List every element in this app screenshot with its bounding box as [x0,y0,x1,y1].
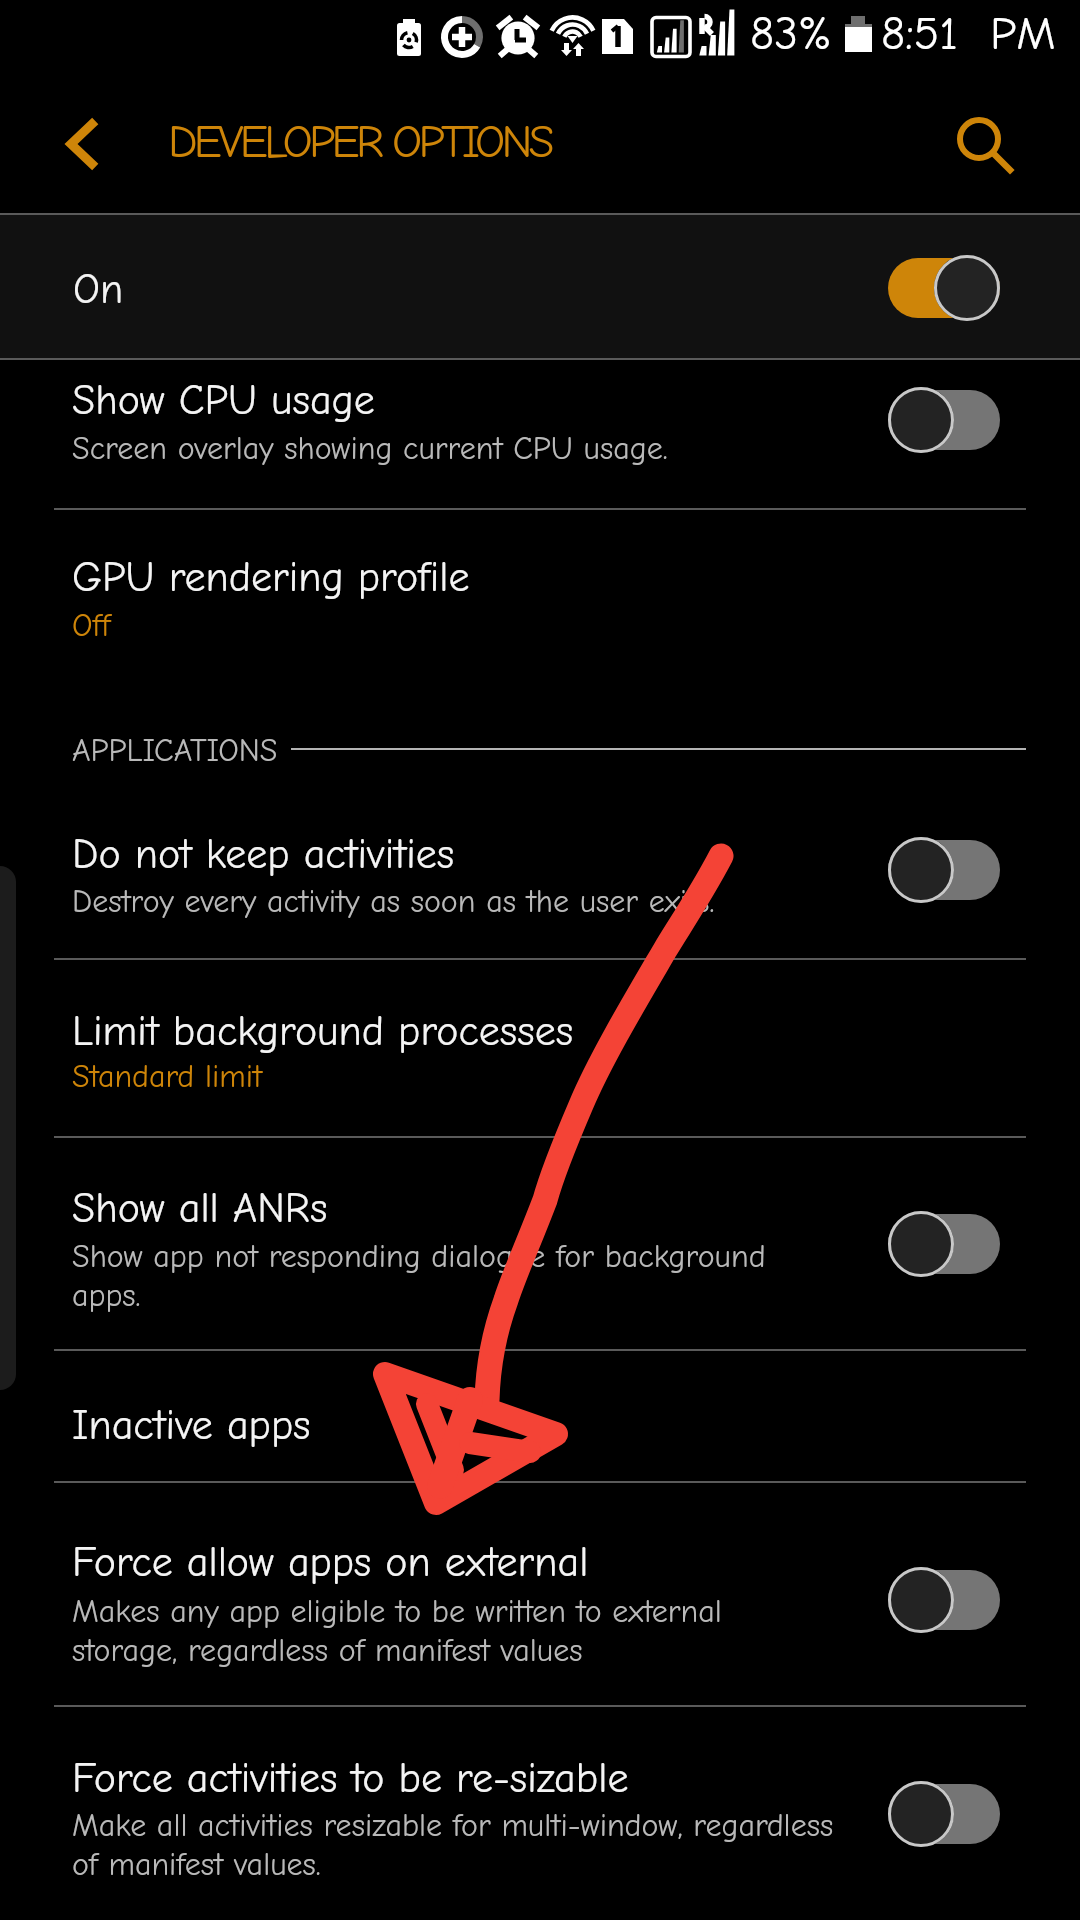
staticText: Off [72,607,111,644]
button[interactable]: Back [30,70,134,218]
staticText: Show CPU usage [72,376,375,424]
button[interactable]: Switch off [874,1770,1014,1858]
staticText: Inactive apps [72,1401,311,1449]
staticText: DEVELOPER OPTIONS [168,115,551,169]
button[interactable]: Switch off [874,376,1014,464]
button[interactable]: Switch off [874,1556,1014,1644]
button[interactable]: Switch off [874,826,1014,914]
staticText: Force allow apps on external [72,1538,589,1586]
button[interactable] [0,1137,1080,1349]
staticText: Standard limit [72,1058,263,1095]
button[interactable] [0,214,1080,359]
staticText: APPLICATIONS [72,732,278,769]
staticText: Destroy every activity as soon as the us… [72,883,715,920]
button[interactable]: Search [930,70,1040,218]
staticText: GPU rendering profile [72,553,470,601]
staticText: 8:51 [881,7,958,61]
button[interactable] [0,760,1080,958]
button[interactable] [0,359,1080,508]
staticText: Limit background processes [72,1007,574,1055]
button[interactable] [0,509,1080,700]
staticText: Make all activities resizable for multi-… [72,1807,834,1883]
staticText: Screen overlay showing current CPU usage… [72,430,668,467]
button[interactable] [0,1350,1080,1481]
button[interactable] [0,1482,1080,1705]
button[interactable] [0,959,1080,1136]
staticText: Do not keep activities [72,830,455,878]
staticText: 83% [750,7,832,61]
button[interactable] [0,1706,1080,1900]
staticText: PM [990,7,1056,61]
staticText: Show all ANRs [72,1184,328,1232]
staticText: Force activities to be re-sizable [72,1754,629,1802]
staticText: Makes any app eligible to be written to … [72,1593,722,1669]
staticText: On [73,265,124,313]
staticText: Show app not responding dialogue for bac… [72,1238,766,1314]
button[interactable]: Switch on [874,244,1014,332]
button[interactable]: Switch off [874,1200,1014,1288]
